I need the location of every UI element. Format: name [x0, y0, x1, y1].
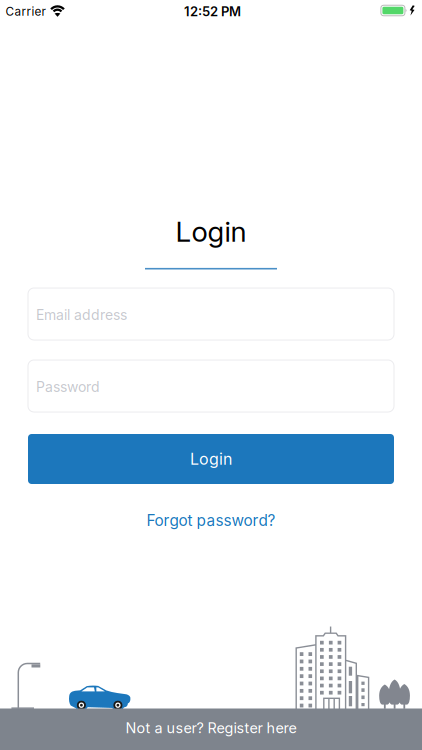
- textField[interactable]: Email address: [28, 299, 394, 329]
- staticText: Email address: [28, 299, 178, 329]
- staticText: Login: [175, 215, 246, 248]
- staticText: Carrier: [5, 4, 45, 19]
- staticText: Forgot password?: [146, 511, 275, 530]
- staticText: Password: [36, 378, 100, 395]
- staticText: Password: [28, 371, 132, 401]
- button[interactable]: Not a user? Register here: [0, 708, 422, 750]
- staticText: 12:52 PM: [184, 4, 241, 19]
- staticText: Login: [190, 449, 232, 469]
- button[interactable]: Login: [28, 434, 394, 484]
- textField[interactable]: Password: [28, 371, 394, 401]
- staticText: Not a user? Register here: [125, 719, 296, 737]
- staticText: Email address: [36, 306, 127, 323]
- button[interactable]: Forgot password?: [146, 511, 275, 530]
